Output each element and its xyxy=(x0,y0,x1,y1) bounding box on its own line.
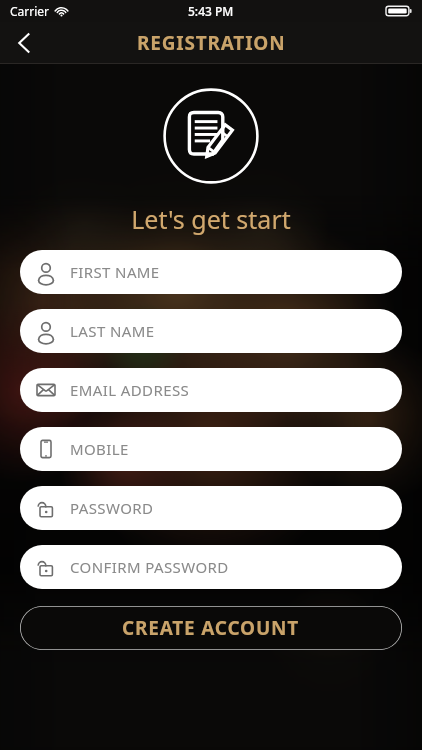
button[interactable]: EMAIL ADDRESS xyxy=(20,368,402,412)
staticText: FIRST NAME xyxy=(70,262,160,282)
button[interactable]: PASSWORD xyxy=(20,486,402,530)
button[interactable]: CONFIRM PASSWORD xyxy=(20,545,402,589)
button[interactable]: LAST NAME xyxy=(20,309,402,353)
staticText: Let's get start xyxy=(0,202,422,236)
staticText: PASSWORD xyxy=(70,498,154,518)
staticText: 5:43 PM xyxy=(188,3,234,19)
staticText: CONFIRM PASSWORD xyxy=(70,557,229,577)
button[interactable]: MOBILE xyxy=(20,427,402,471)
staticText: Carrier xyxy=(10,3,50,19)
staticText: CREATE ACCOUNT xyxy=(122,615,300,641)
staticText: REGISTRATION xyxy=(137,30,286,56)
staticText: LAST NAME xyxy=(70,321,155,341)
staticText: MOBILE xyxy=(70,439,129,459)
button[interactable]: Back xyxy=(0,22,48,64)
button[interactable]: CREATE ACCOUNT xyxy=(20,606,402,650)
staticText: EMAIL ADDRESS xyxy=(70,380,190,400)
button[interactable]: FIRST NAME xyxy=(20,250,402,294)
